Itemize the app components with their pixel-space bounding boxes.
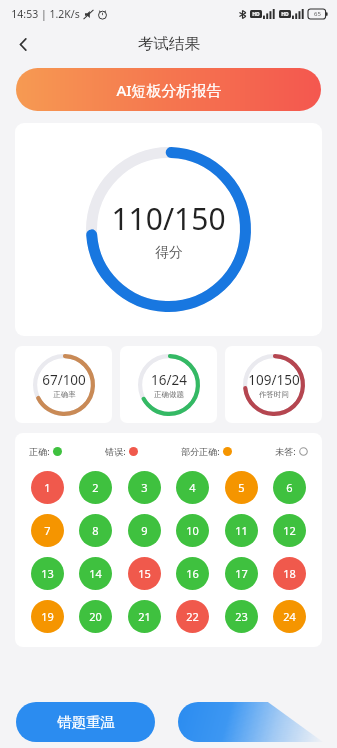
staticText: 错题重温 (57, 713, 115, 731)
staticText: 正确率 (53, 390, 76, 399)
button[interactable]: 正确: (29, 445, 62, 457)
staticText: 错误: (105, 445, 126, 457)
staticText: 4 (189, 480, 196, 495)
button[interactable]: 14 (79, 557, 112, 590)
button[interactable]: 1 (31, 471, 64, 504)
button[interactable]: 16 (176, 557, 209, 590)
staticText: 15 (138, 566, 151, 581)
button[interactable]: 18 (273, 557, 306, 590)
staticText: 21 (138, 609, 151, 624)
button[interactable]: 17 (225, 557, 258, 590)
staticText: 6 (286, 480, 293, 495)
button[interactable]: 下一步 (178, 702, 323, 742)
button[interactable]: 部分正确: (181, 445, 232, 457)
button[interactable]: 3 (128, 471, 161, 504)
staticText: 67/100 (42, 371, 86, 389)
staticText: 9 (141, 523, 148, 538)
button[interactable]: 23 (225, 600, 258, 633)
staticText: AI短板分析报告 (116, 80, 222, 100)
staticText: 109/150 (248, 371, 300, 389)
button[interactable]: 16/24 (120, 346, 217, 423)
staticText: 得分 (155, 244, 183, 262)
staticText: 13 (41, 566, 54, 581)
button[interactable]: 11 (225, 514, 258, 547)
button[interactable]: 2 (79, 471, 112, 504)
staticText: 24 (283, 609, 296, 624)
staticText: 作答时间 (259, 390, 289, 399)
button[interactable]: 109/150 (225, 346, 322, 423)
staticText: 17 (235, 566, 248, 581)
staticText: 考试结果 (138, 34, 200, 54)
button[interactable]: 19 (31, 600, 64, 633)
button[interactable]: 5 (225, 471, 258, 504)
staticText: 部分正确: (181, 445, 220, 457)
staticText: 18 (283, 566, 296, 581)
staticText: 8 (92, 523, 99, 538)
staticText: 12 (283, 523, 296, 538)
button[interactable]: 6 (273, 471, 306, 504)
staticText: 110/150 (111, 198, 226, 239)
staticText: 正确做题 (154, 390, 184, 399)
staticText: 16/24 (151, 371, 187, 389)
staticText: HD (252, 11, 260, 18)
button[interactable]: 21 (128, 600, 161, 633)
staticText: 22 (186, 609, 199, 624)
staticText: 2 (92, 480, 99, 495)
staticText: HD (281, 11, 289, 18)
button[interactable]: 20 (79, 600, 112, 633)
button[interactable]: 24 (273, 600, 306, 633)
staticText: 65 (314, 10, 321, 18)
button[interactable]: 错误: (105, 445, 138, 457)
button[interactable]: 67/100 (15, 346, 112, 423)
staticText: 23 (235, 609, 248, 624)
button[interactable]: Back (6, 27, 40, 61)
button[interactable]: 9 (128, 514, 161, 547)
button[interactable]: AI短板分析报告 (16, 68, 321, 111)
button[interactable]: 错题重温 (16, 702, 155, 742)
button[interactable]: 8 (79, 514, 112, 547)
staticText: 11 (235, 523, 248, 538)
staticText: 1 (44, 480, 51, 495)
button[interactable]: 15 (128, 557, 161, 590)
button[interactable]: 13 (31, 557, 64, 590)
button[interactable]: 10 (176, 514, 209, 547)
button[interactable]: 7 (31, 514, 64, 547)
staticText: 14:53 | 1.2K/s (11, 7, 80, 21)
staticText: 3 (141, 480, 148, 495)
staticText: 10 (186, 523, 199, 538)
button[interactable]: 未答: (275, 445, 308, 457)
staticText: 16 (186, 566, 199, 581)
staticText: 20 (89, 609, 102, 624)
button[interactable]: 22 (176, 600, 209, 633)
staticText: 14 (89, 566, 102, 581)
staticText: 正确: (29, 445, 50, 457)
staticText: 未答: (275, 445, 296, 457)
button[interactable]: 12 (273, 514, 306, 547)
button[interactable]: 4 (176, 471, 209, 504)
staticText: 7 (44, 523, 51, 538)
staticText: 19 (41, 609, 54, 624)
staticText: 5 (238, 480, 245, 495)
